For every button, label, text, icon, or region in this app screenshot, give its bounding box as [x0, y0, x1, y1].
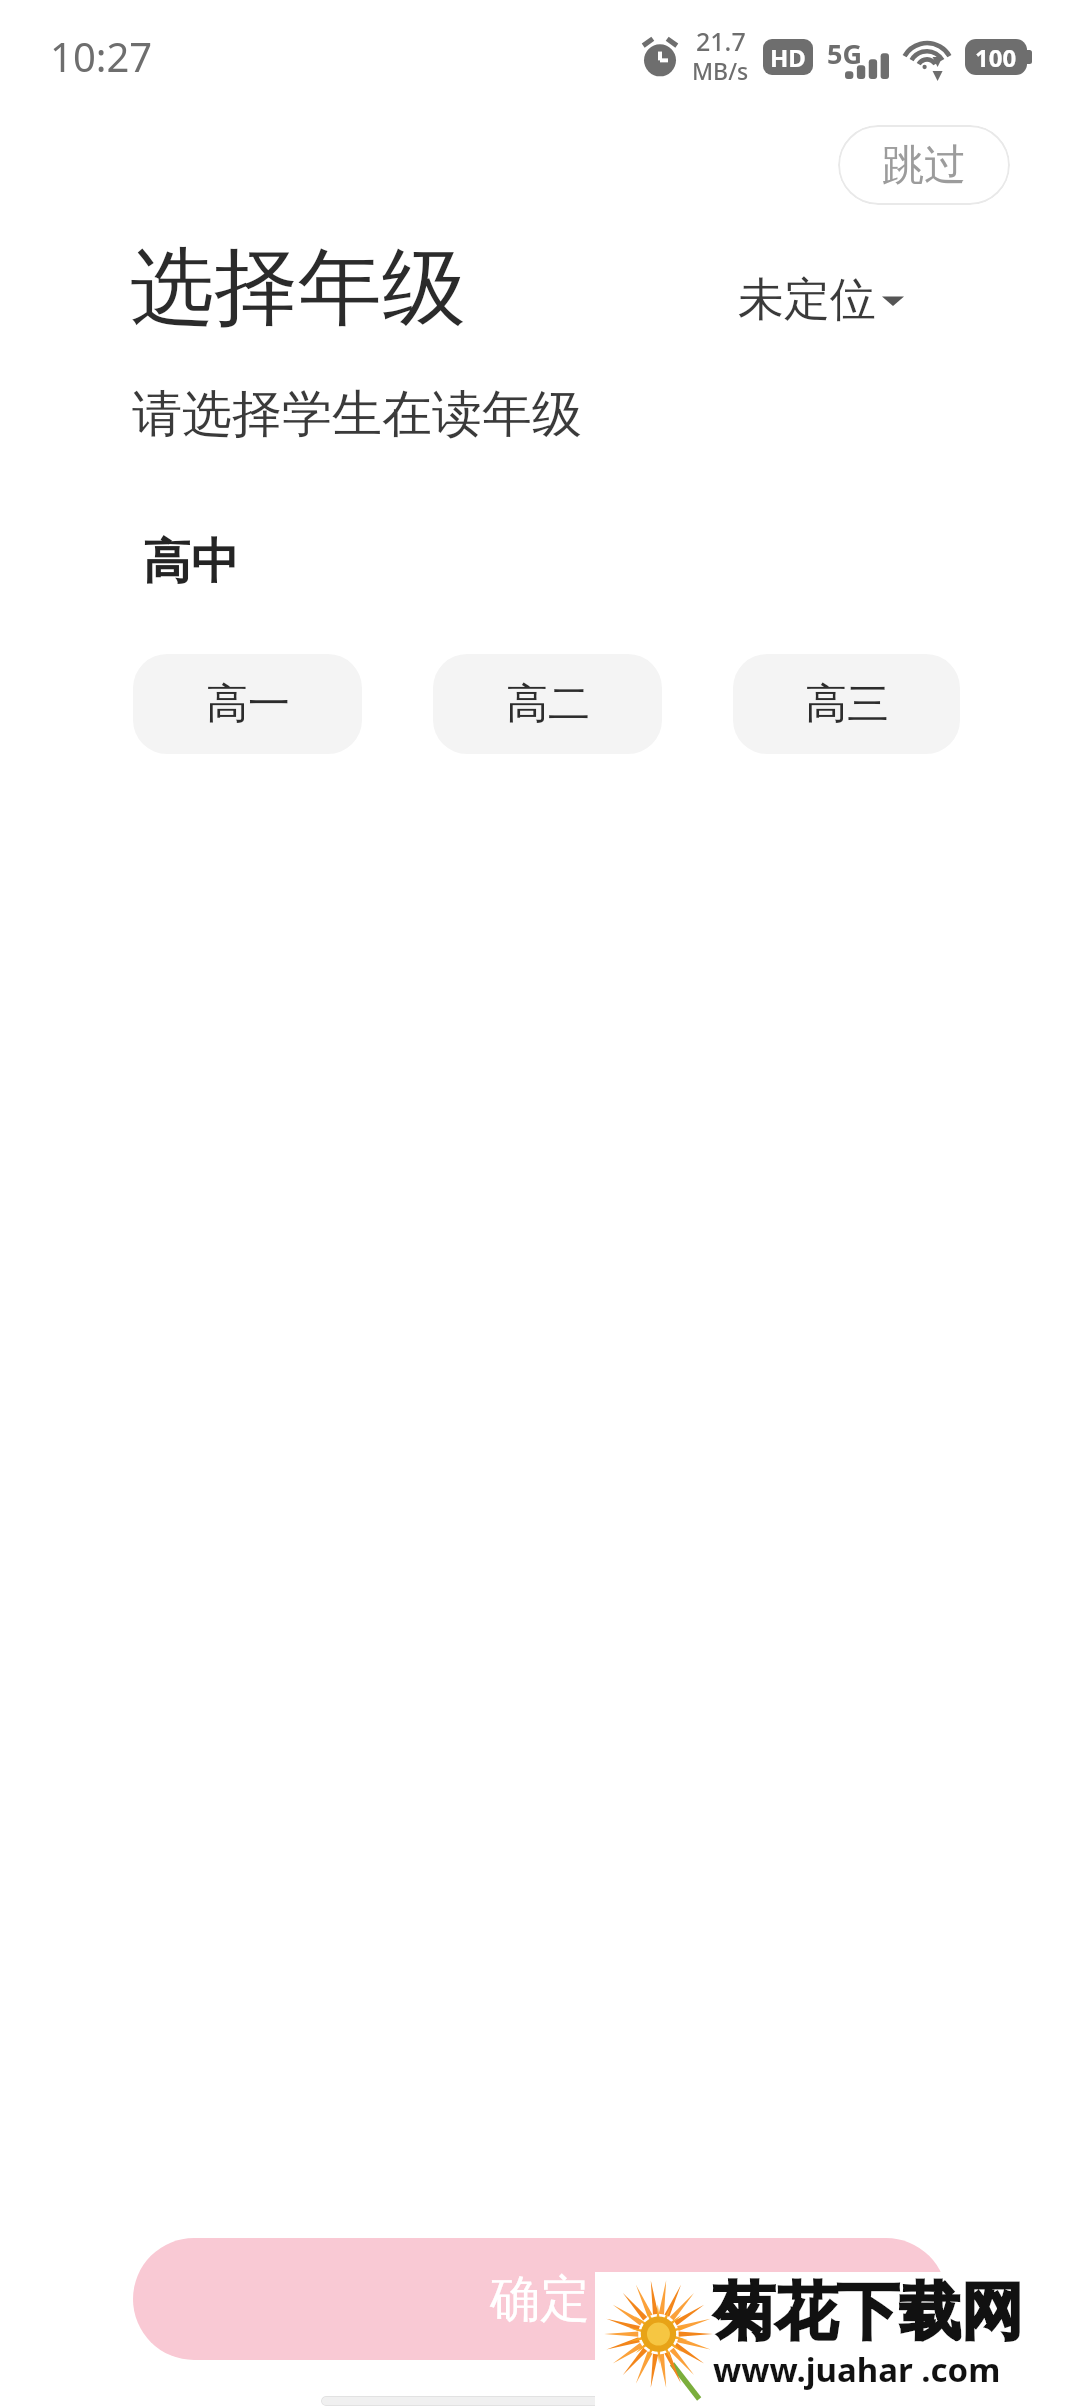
button[interactable]: 高一 [133, 654, 362, 754]
button[interactable]: 高二 [433, 654, 662, 754]
button[interactable]: 未定位 [738, 271, 904, 329]
staticText: 高一 [206, 678, 290, 731]
staticText: 100 [975, 41, 1017, 74]
staticText: 跳过 [882, 139, 966, 192]
staticText: 未定位 [738, 271, 876, 329]
staticText: MB/s [692, 55, 749, 86]
staticText: 高中 [143, 532, 239, 592]
button[interactable]: 确定 [133, 2238, 947, 2360]
staticText: 高三 [805, 678, 889, 731]
staticText: 高二 [506, 678, 590, 731]
staticText: HD [770, 41, 806, 74]
staticText: 选择年级 [130, 235, 466, 341]
button[interactable]: 高三 [733, 654, 960, 754]
button[interactable]: 跳过 [838, 125, 1010, 205]
staticText: 21.7 [696, 24, 746, 58]
staticText: 10:27 [50, 29, 153, 83]
staticText: 确定 [490, 2268, 590, 2331]
staticText: 5G [827, 35, 862, 72]
staticText: www.juahar .com [713, 2347, 1001, 2392]
staticText: 菊花下载网 [713, 2273, 1023, 2351]
staticText: 请选择学生在读年级 [132, 383, 582, 446]
